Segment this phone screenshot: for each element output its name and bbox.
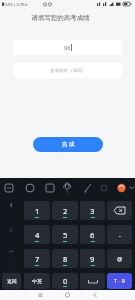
button[interactable] — [63, 291, 72, 299]
staticText: : — [10, 261, 12, 267]
staticText: 5 — [63, 230, 68, 240]
staticText: 96 — [64, 44, 71, 51]
staticText: ¥ — [10, 202, 13, 208]
button[interactable]: 3 — [80, 201, 105, 220]
button[interactable] — [24, 182, 38, 195]
button[interactable]: 全省排名（选填） — [13, 63, 122, 78]
button[interactable] — [116, 182, 130, 195]
button[interactable]: 0 — [52, 273, 78, 289]
button[interactable]: 1 — [24, 201, 50, 220]
button[interactable]: 96 — [13, 40, 122, 55]
staticText: 全省排名（选填） — [50, 68, 86, 74]
staticText: 返回 — [7, 278, 17, 284]
button[interactable]: 9 — [80, 249, 105, 268]
staticText: 9 — [122, 278, 125, 284]
staticText: 请填写您的高考成绩 — [0, 14, 128, 22]
button[interactable]: 7 — [24, 249, 50, 268]
button[interactable]: T — [107, 273, 132, 289]
staticText: — — [9, 248, 14, 254]
staticText: 完成 — [61, 141, 75, 148]
staticText: 6 — [90, 230, 95, 240]
button[interactable]: 完成 — [33, 137, 103, 152]
button[interactable]: 5 — [52, 225, 78, 244]
staticText: 4 — [35, 230, 40, 240]
staticText: 0 — [63, 276, 68, 286]
button[interactable]: . — [107, 225, 132, 244]
button[interactable] — [82, 182, 96, 195]
button[interactable]: 中英 — [24, 273, 50, 289]
button[interactable]: 2 — [52, 201, 78, 220]
button[interactable]: 返回 — [2, 273, 21, 289]
button[interactable] — [62, 182, 76, 195]
button[interactable] — [44, 182, 58, 195]
staticText: / — [10, 227, 12, 233]
staticText: 1 — [35, 206, 40, 216]
staticText: . — [119, 230, 121, 240]
button[interactable]: 4 — [24, 225, 50, 244]
button[interactable] — [80, 273, 105, 289]
button[interactable] — [36, 291, 45, 299]
staticText: T — [114, 278, 117, 284]
staticText: 7 — [35, 254, 40, 264]
staticText: 3:05 | 3.7K/s — [5, 2, 28, 7]
button[interactable]: 8 — [52, 249, 78, 268]
staticText: 9 — [90, 254, 95, 264]
staticText: 2 — [63, 206, 68, 216]
button[interactable] — [98, 182, 112, 195]
staticText: 8 — [63, 254, 68, 264]
staticText: 3 — [90, 206, 95, 216]
staticText: @ — [117, 255, 123, 263]
staticText: 中英 — [32, 278, 42, 284]
button[interactable] — [4, 182, 18, 195]
button[interactable]: @ — [107, 249, 132, 268]
button[interactable] — [107, 201, 132, 220]
button[interactable] — [91, 291, 100, 299]
button[interactable]: 6 — [80, 225, 105, 244]
